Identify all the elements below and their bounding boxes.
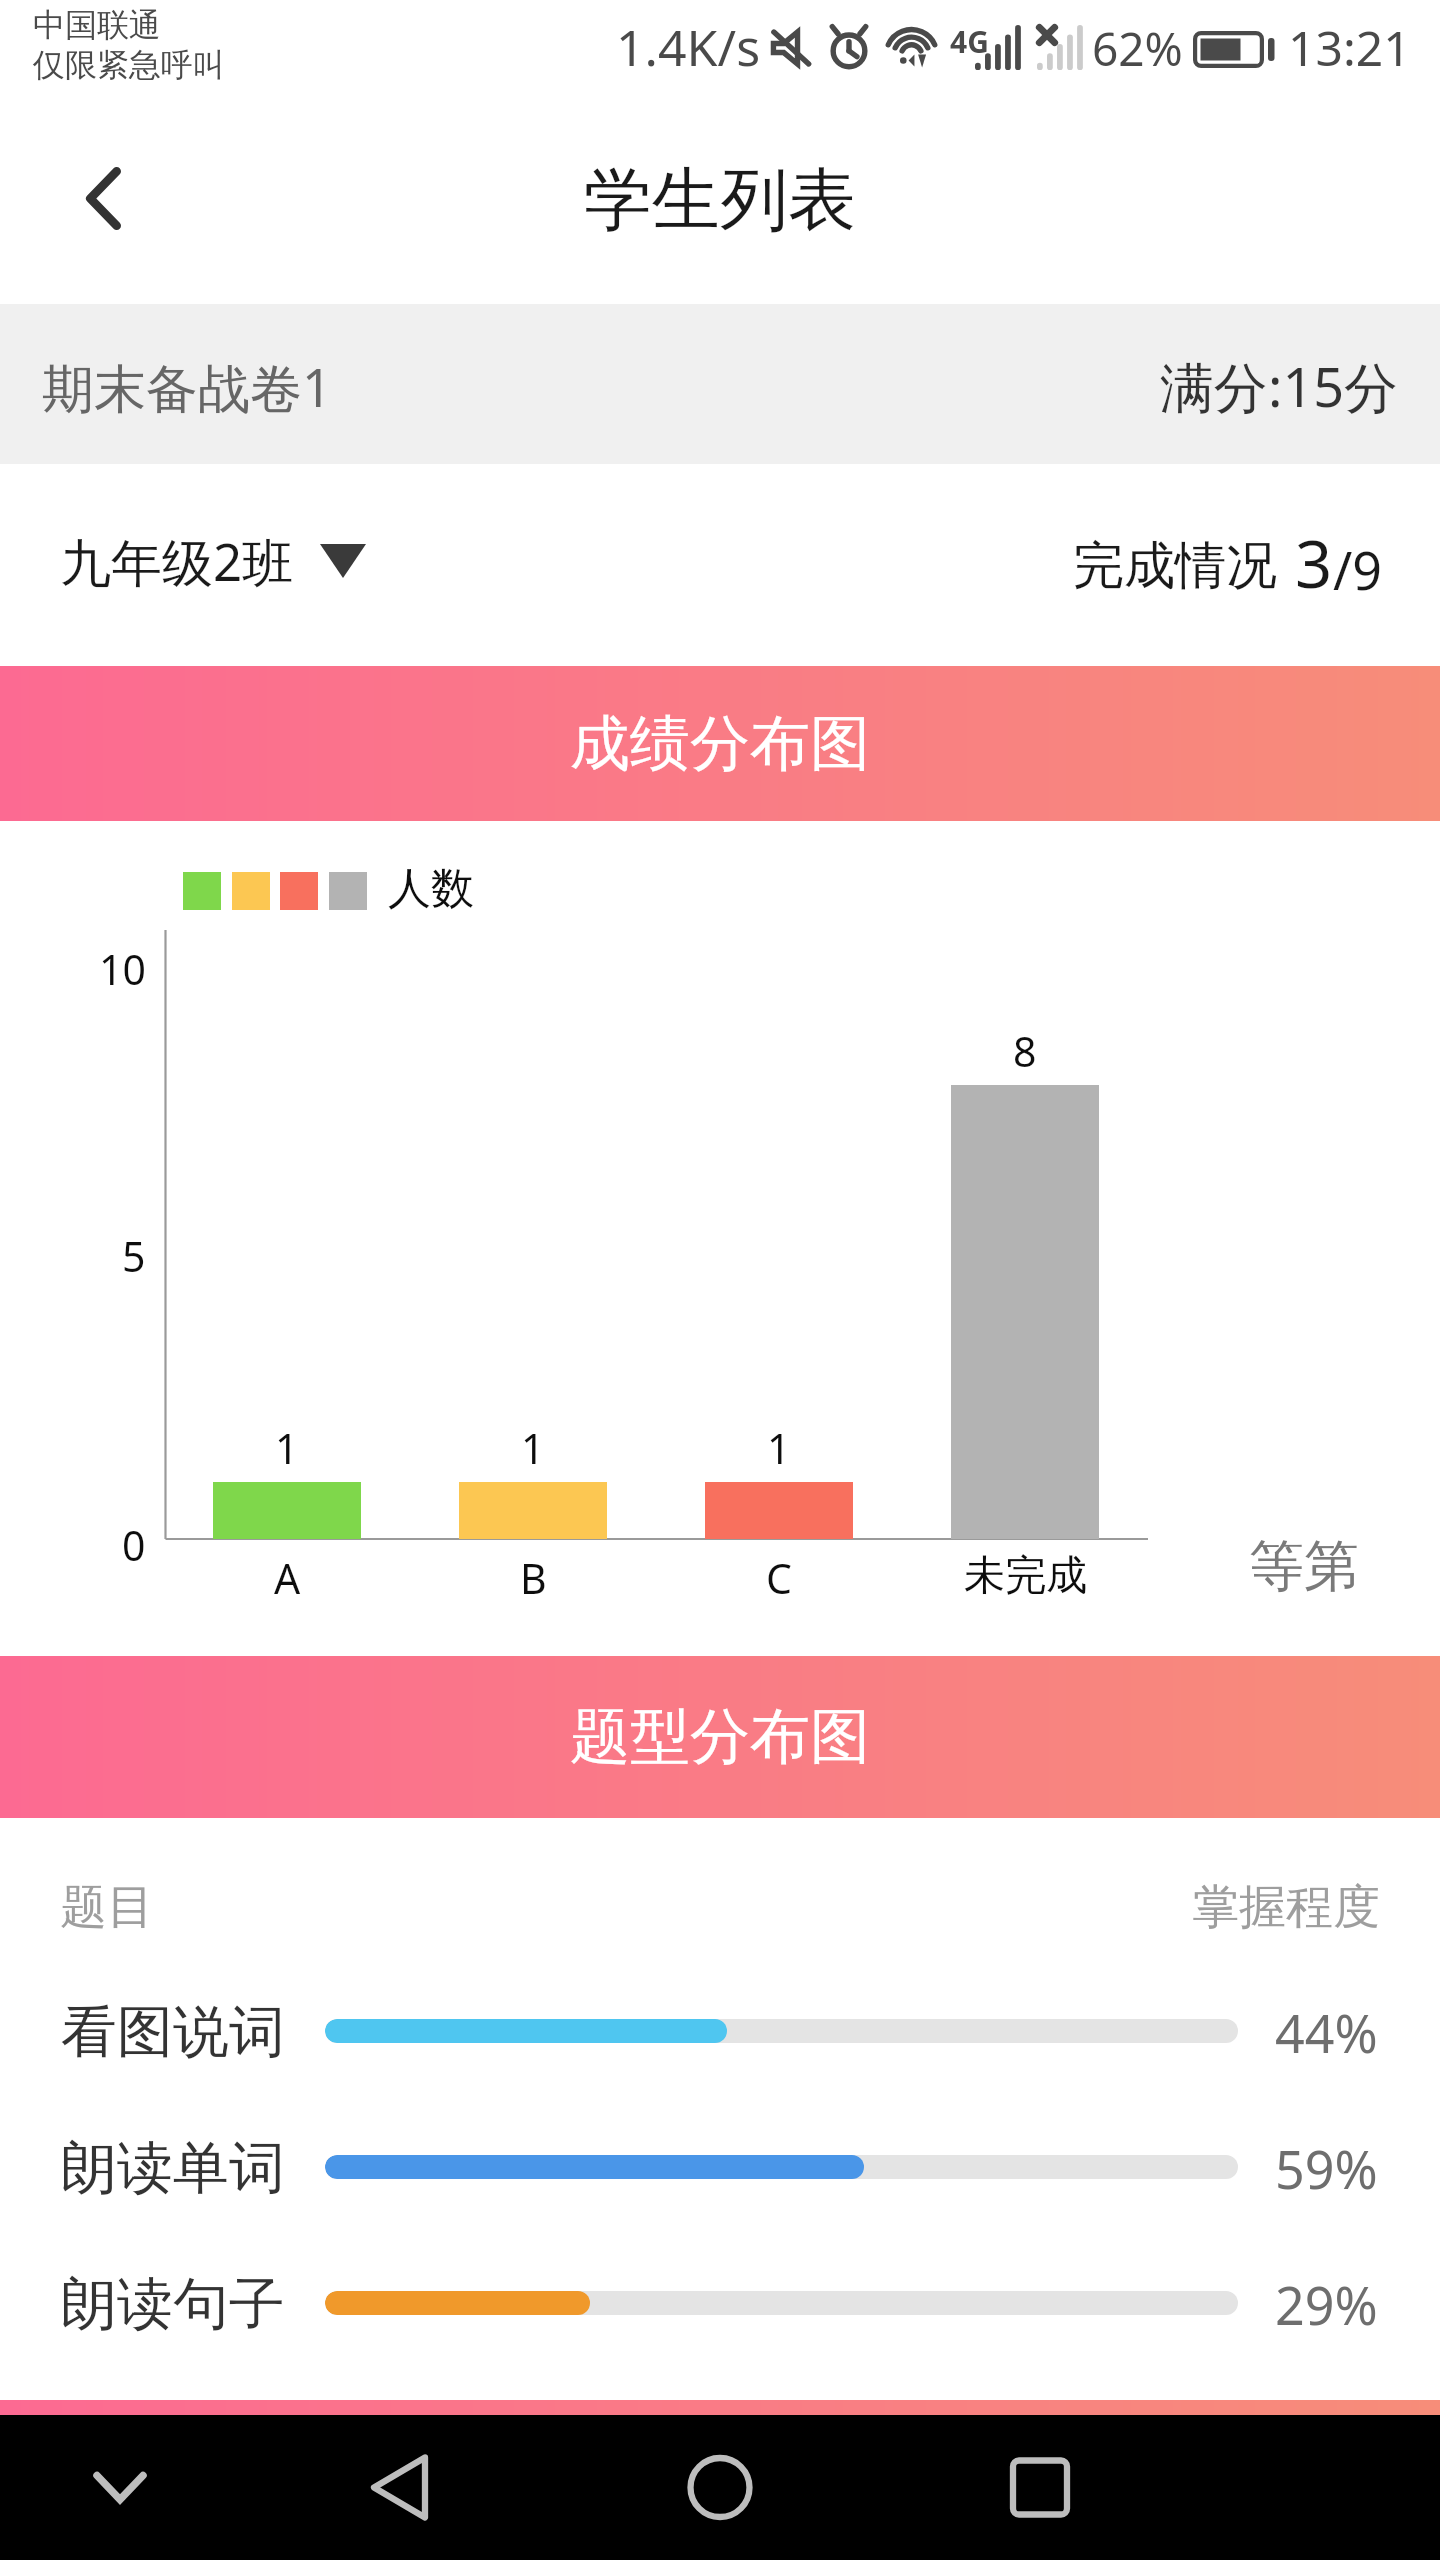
staticText: 朗读单词 — [61, 2133, 285, 2204]
staticText: 未完成 — [964, 1550, 1087, 1602]
staticText: 九年级2班 — [60, 526, 294, 596]
staticText: 成绩分布图 — [570, 706, 870, 782]
staticText: 1 — [521, 1420, 545, 1476]
staticText: A — [274, 1550, 301, 1606]
staticText: 等第 — [1249, 1532, 1359, 1601]
staticText: 朗读句子 — [61, 2269, 285, 2340]
staticText: 0 — [122, 1517, 146, 1573]
button[interactable]: Home — [660, 2427, 780, 2548]
staticText: 中国联通 — [33, 5, 161, 45]
button[interactable]: Hide keyboard — [60, 2427, 180, 2548]
staticText: 期末备战卷1 — [42, 351, 332, 422]
button[interactable]: 看图说词 — [0, 1963, 1440, 2099]
staticText: 满分:15分 — [1160, 349, 1399, 423]
staticText: 人数 — [388, 862, 474, 916]
staticText: C — [766, 1550, 792, 1606]
staticText: 13:21 — [1288, 15, 1411, 80]
staticText: /9 — [1333, 534, 1383, 605]
staticText: 题型分布图 — [570, 1699, 870, 1775]
staticText: B — [520, 1550, 547, 1606]
button[interactable]: 九年级2班 — [60, 526, 366, 596]
staticText: 1 — [275, 1420, 299, 1476]
staticText: 62% — [1092, 17, 1183, 80]
staticText: 8 — [1013, 1023, 1037, 1079]
staticText: 4G — [950, 21, 989, 62]
staticText: 44% — [1275, 1997, 1378, 2068]
staticText: 1 — [767, 1420, 791, 1476]
button[interactable]: 题型分布图 — [0, 1656, 1440, 1818]
button[interactable]: Back — [340, 2427, 460, 2548]
staticText: 3 — [1295, 519, 1333, 608]
button[interactable]: 朗读单词 — [0, 2099, 1440, 2235]
staticText: 仅限紧急呼叫 — [33, 45, 225, 85]
staticText: 1.4K/s — [616, 13, 761, 81]
staticText: 29% — [1275, 2269, 1378, 2340]
staticText: 10 — [99, 941, 146, 997]
button[interactable]: Back — [28, 123, 178, 273]
staticText: 完成情况 — [1073, 534, 1277, 598]
staticText: 59% — [1275, 2133, 1378, 2204]
staticText: 题目 — [60, 1878, 154, 1937]
button[interactable]: 成绩分布图 — [0, 666, 1440, 821]
button[interactable]: Recent apps — [980, 2427, 1100, 2548]
button[interactable]: 朗读句子 — [0, 2235, 1440, 2371]
staticText: 5 — [122, 1228, 146, 1284]
staticText: 看图说词 — [61, 1997, 285, 2068]
staticText: 学生列表 — [584, 158, 856, 244]
staticText: 掌握程度 — [1192, 1878, 1380, 1937]
